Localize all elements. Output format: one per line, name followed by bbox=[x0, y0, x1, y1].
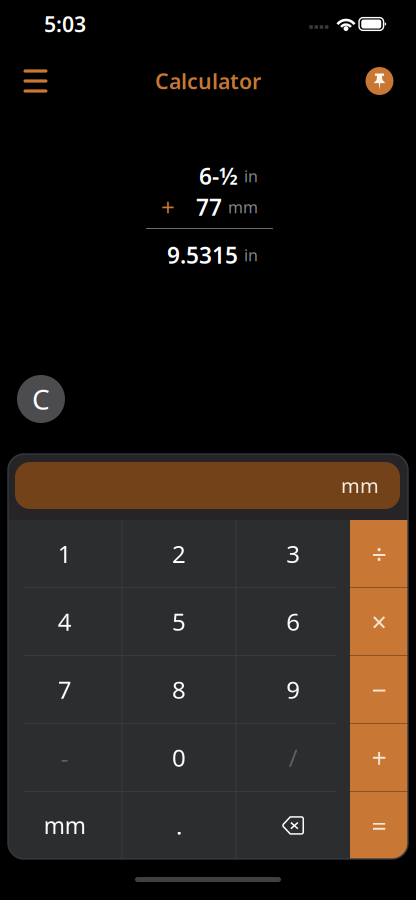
staticText: 3 bbox=[286, 538, 300, 569]
button[interactable]: 0 bbox=[122, 724, 236, 791]
staticText: 7 bbox=[58, 674, 72, 705]
button[interactable]: 3 bbox=[236, 520, 350, 587]
button[interactable]: 1 bbox=[8, 520, 121, 587]
button[interactable]: Add bbox=[350, 724, 408, 791]
staticText: mm bbox=[44, 810, 86, 840]
staticText: + bbox=[161, 191, 175, 223]
button[interactable]: 6 bbox=[236, 588, 350, 655]
staticText: 6 bbox=[286, 606, 300, 637]
button[interactable]: Divide bbox=[350, 520, 408, 587]
button[interactable]: . bbox=[122, 792, 236, 859]
staticText: 4 bbox=[58, 606, 72, 637]
staticText: ÷ bbox=[371, 536, 386, 571]
staticText: 9.5315 bbox=[167, 240, 238, 270]
button[interactable]: 2 bbox=[122, 520, 236, 587]
button[interactable]: Delete bbox=[236, 792, 350, 859]
button[interactable]: Subtract bbox=[350, 656, 408, 723]
staticText: - bbox=[61, 741, 69, 773]
staticText: Calculator bbox=[155, 67, 261, 95]
staticText: mm bbox=[228, 196, 258, 218]
staticText: 0 bbox=[172, 741, 186, 773]
button[interactable]: Multiply bbox=[350, 588, 408, 655]
staticText: in bbox=[244, 165, 258, 187]
button[interactable]: mm bbox=[8, 792, 121, 859]
staticText: 1 bbox=[58, 538, 72, 569]
staticText: 2 bbox=[172, 538, 186, 569]
button[interactable]: / bbox=[236, 724, 350, 791]
staticText: C bbox=[32, 380, 50, 418]
button[interactable]: C bbox=[17, 375, 65, 423]
staticText: 5:03 bbox=[44, 10, 86, 38]
staticText: 9 bbox=[286, 674, 300, 705]
button[interactable]: 4 bbox=[8, 588, 121, 655]
staticText: = bbox=[371, 808, 386, 843]
staticText: × bbox=[371, 604, 386, 639]
staticText: 5 bbox=[172, 606, 186, 637]
staticText: − bbox=[371, 672, 386, 707]
staticText: in bbox=[244, 244, 258, 266]
staticText: . bbox=[176, 809, 182, 841]
staticText: mm bbox=[341, 472, 379, 499]
staticText: 8 bbox=[172, 674, 186, 705]
button[interactable]: mm bbox=[15, 462, 400, 509]
button[interactable]: 9 bbox=[236, 656, 350, 723]
staticText: / bbox=[289, 741, 298, 773]
button[interactable]: Pin bbox=[357, 59, 401, 103]
button[interactable]: 8 bbox=[122, 656, 236, 723]
staticText: 6-½ bbox=[199, 161, 238, 191]
button[interactable]: Equals bbox=[350, 792, 408, 859]
button[interactable]: Menu bbox=[11, 57, 59, 105]
button[interactable]: 7 bbox=[8, 656, 121, 723]
button[interactable]: 5 bbox=[122, 588, 236, 655]
staticText: 77 bbox=[196, 192, 222, 222]
staticText: + bbox=[371, 740, 386, 775]
